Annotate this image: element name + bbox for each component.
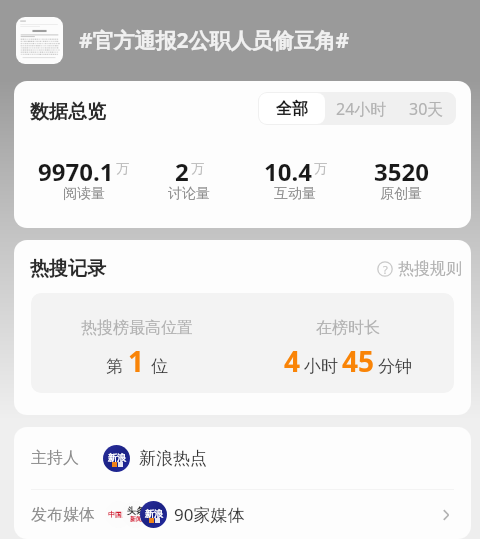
staticText: 头条 — [127, 505, 145, 516]
button[interactable]: 发布媒体 — [14, 490, 471, 539]
staticText: 在榜时长 — [316, 318, 380, 338]
staticText: 45 — [342, 342, 375, 380]
staticText: 4 — [284, 342, 301, 380]
staticText: 原创量 — [380, 185, 422, 203]
staticText: 主持人 — [31, 448, 79, 468]
staticText: 1 — [128, 342, 145, 380]
staticText: 万 — [116, 160, 129, 176]
staticText: 90家媒体 — [174, 503, 245, 526]
staticText: 万 — [191, 160, 204, 176]
other: More media — [438, 507, 454, 523]
staticText: 万 — [314, 160, 327, 176]
staticText: 第 — [106, 356, 123, 377]
staticText: 3520 — [374, 155, 429, 188]
staticText: 热搜记录 — [30, 257, 106, 281]
staticText: 10.4 — [264, 155, 312, 188]
staticText: 中国网 — [108, 510, 129, 519]
staticText: 小时 — [304, 356, 338, 377]
staticText: 热搜榜最高位置 — [81, 318, 193, 338]
staticText: 30天 — [409, 98, 444, 120]
staticText: 2 — [175, 155, 189, 188]
staticText: 发布媒体 — [31, 505, 95, 525]
button[interactable]: ? — [377, 259, 471, 279]
button[interactable]: 全部 — [259, 93, 325, 124]
staticText: 新浪 — [145, 508, 163, 519]
staticText: 新闻 — [130, 515, 142, 523]
staticText: 热搜规则 — [398, 259, 462, 279]
staticText: #官方通报2公职人员偷豆角# — [79, 26, 350, 55]
staticText: 数据总览 — [30, 100, 106, 124]
staticText: 24小时 — [336, 98, 387, 120]
staticText: 新浪 — [108, 452, 126, 463]
staticText: 讨论量 — [168, 185, 210, 203]
button[interactable]: 主持人 — [14, 427, 471, 489]
staticText: 新浪热点 — [139, 448, 207, 469]
staticText: 阅读量 — [63, 185, 105, 203]
staticText: 互动量 — [274, 185, 316, 203]
staticText: ? — [383, 262, 388, 277]
staticText: 9970.1 — [38, 155, 114, 188]
staticText: 全部 — [276, 99, 308, 119]
staticText: 分钟 — [378, 356, 412, 377]
button[interactable]: 24小时 — [325, 93, 398, 124]
button[interactable]: 30天 — [398, 93, 455, 124]
staticText: 位 — [151, 356, 168, 377]
